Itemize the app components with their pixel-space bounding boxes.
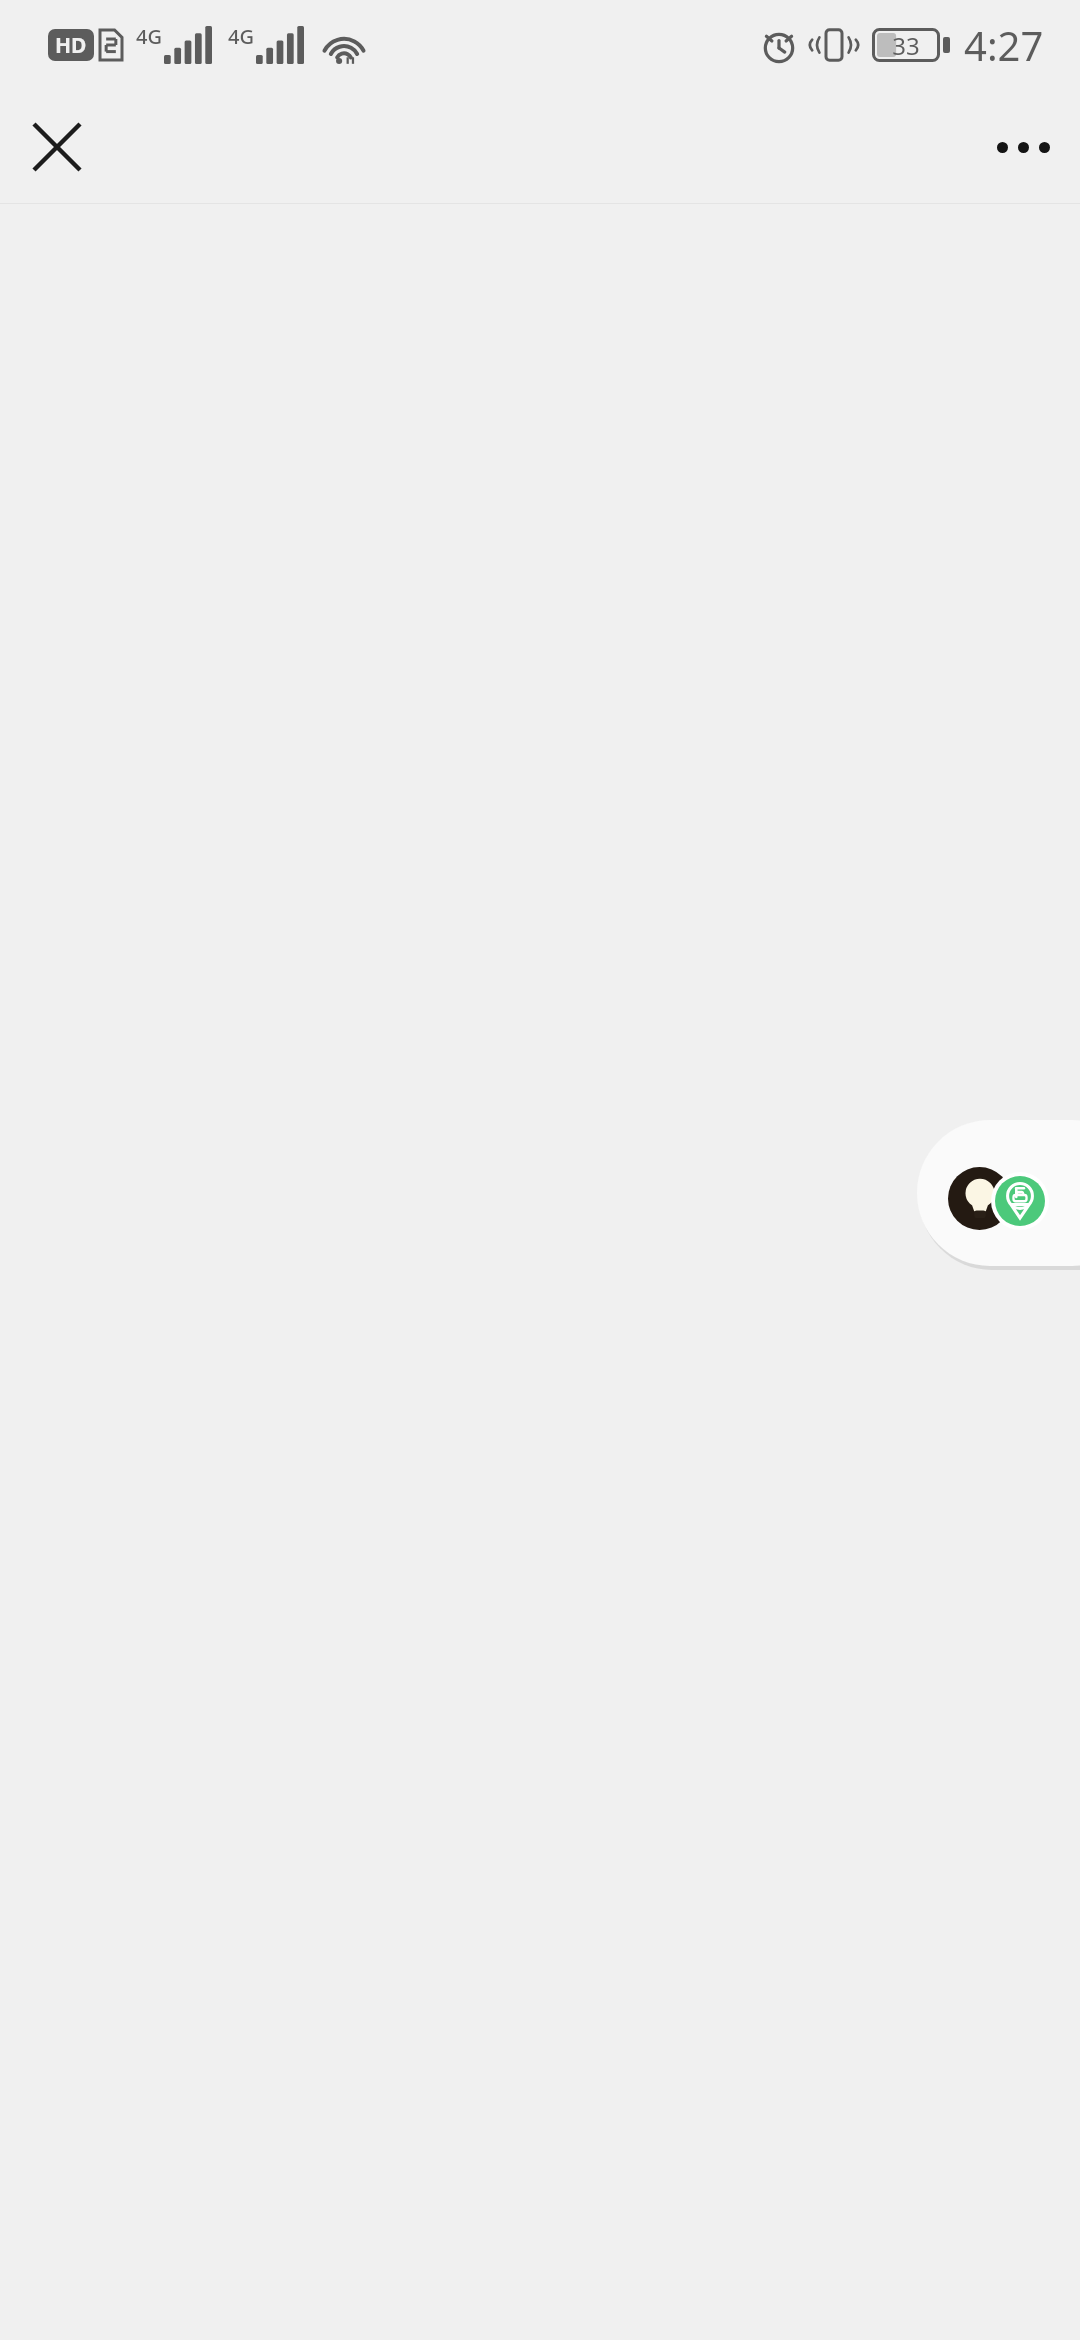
button[interactable]: More options	[978, 102, 1068, 192]
staticText: 4G	[228, 23, 254, 50]
button[interactable]: Close	[12, 102, 102, 192]
staticText: 4G	[136, 23, 162, 50]
button[interactable]: Floating assistant	[917, 1120, 1080, 1266]
staticText: 33	[892, 29, 920, 62]
staticText: 4:27	[964, 18, 1044, 72]
staticText: HD	[55, 31, 87, 60]
